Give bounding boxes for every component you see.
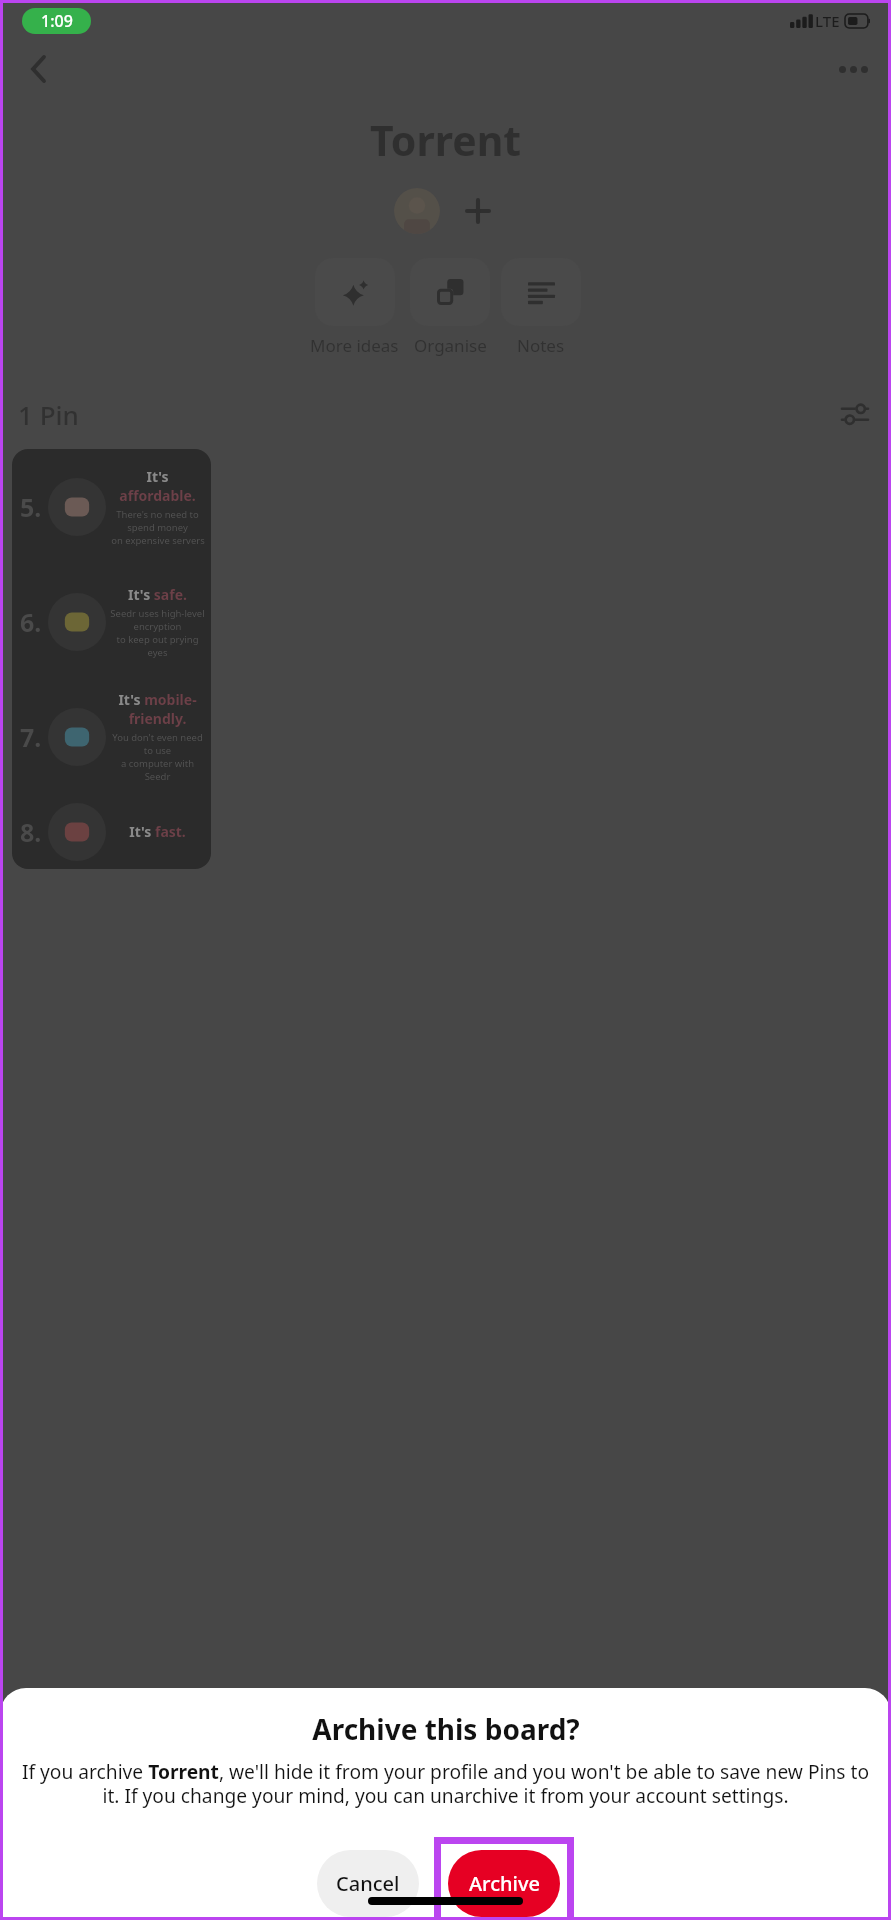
- staticText: Organise: [414, 334, 487, 357]
- button[interactable]: 5.: [12, 449, 211, 869]
- button[interactable]: More ideas: [310, 258, 399, 357]
- staticText: It's mobile-friendly.: [110, 690, 205, 728]
- staticText: It's safe.: [128, 585, 187, 604]
- staticText: on expensive servers: [111, 534, 205, 547]
- staticText: a computer with Seedr: [110, 757, 205, 783]
- staticText: 6.: [20, 605, 42, 639]
- staticText: 1 Pin: [18, 397, 79, 432]
- staticText: It's affordable.: [110, 467, 205, 505]
- staticText: More ideas: [310, 334, 399, 357]
- staticText: 7.: [20, 720, 42, 754]
- button[interactable]: Add collaborator: [458, 191, 498, 231]
- staticText: Seedr uses high-level encryption: [110, 607, 205, 633]
- staticText: 8.: [20, 815, 42, 849]
- staticText: Archive: [469, 1870, 540, 1897]
- staticText: Notes: [517, 334, 565, 357]
- button[interactable]: More options: [829, 45, 877, 93]
- button[interactable]: Archive: [448, 1850, 560, 1917]
- button[interactable]: Cancel: [317, 1850, 419, 1917]
- button[interactable]: Notes: [501, 258, 581, 357]
- staticText: You don't even need to use: [110, 731, 205, 757]
- button[interactable]: Back: [14, 45, 62, 93]
- staticText: Torrent: [370, 112, 522, 168]
- staticText: LTE: [815, 11, 840, 31]
- staticText: If you archive Torrent, we'll hide it fr…: [17, 1758, 874, 1808]
- button[interactable]: Filter: [833, 393, 877, 435]
- staticText: It's fast.: [129, 822, 186, 841]
- staticText: Archive this board?: [312, 1710, 580, 1748]
- button[interactable]: Organise: [410, 258, 490, 357]
- staticText: Cancel: [336, 1870, 400, 1897]
- staticText: There's no need to spend money: [110, 508, 205, 534]
- staticText: to keep out prying eyes: [110, 633, 205, 659]
- staticText: 5.: [20, 490, 42, 524]
- button[interactable]: [394, 188, 440, 234]
- staticText: 1:09: [41, 10, 73, 32]
